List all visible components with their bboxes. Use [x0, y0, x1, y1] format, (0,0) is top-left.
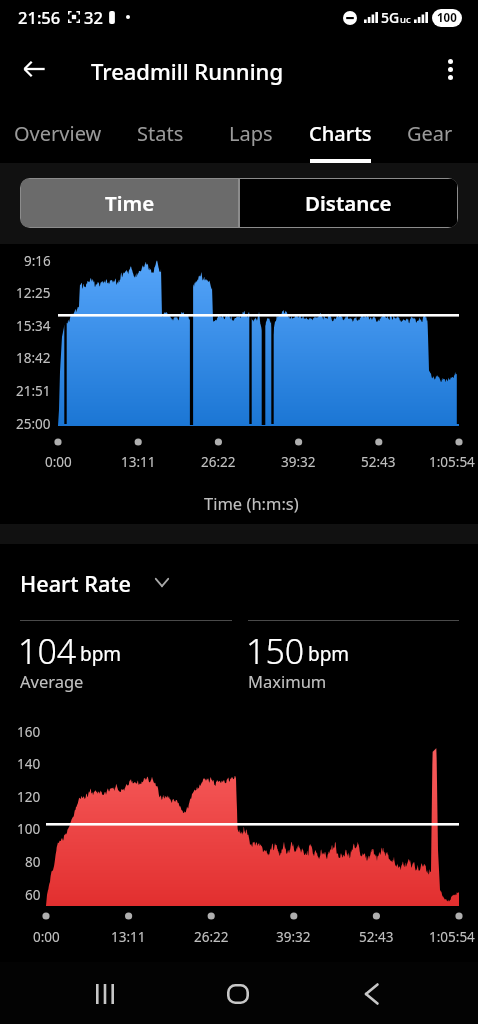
staticText: 21:56	[18, 6, 61, 28]
staticText: 25:00	[16, 415, 51, 433]
button[interactable]: Navigate up	[12, 46, 58, 92]
button[interactable]: Laps	[205, 102, 295, 163]
staticText: 9:16	[24, 252, 51, 270]
staticText: 32	[84, 6, 103, 28]
staticText: 100	[437, 10, 457, 26]
button[interactable]: Heart Rate	[20, 569, 169, 599]
staticText: 18:42	[16, 349, 51, 367]
staticText: 5G	[381, 8, 400, 27]
staticText: 26:22	[194, 928, 229, 946]
staticText: 15:34	[16, 317, 51, 335]
staticText: Gear	[407, 120, 453, 147]
staticText: Distance	[305, 189, 392, 217]
staticText: Maximum	[248, 670, 327, 692]
staticText: 100	[17, 820, 41, 838]
staticText: 39:32	[281, 453, 316, 471]
staticText: Charts	[309, 120, 372, 147]
staticText: 52:43	[359, 928, 394, 946]
staticText: 21:51	[16, 382, 51, 400]
staticText: 120	[17, 788, 41, 806]
button[interactable]: Recent apps	[73, 970, 137, 1018]
staticText: bpm	[80, 641, 122, 667]
staticText: 150	[246, 628, 305, 674]
staticText: 1:05:54	[429, 453, 475, 471]
staticText: Time (h:m:s)	[204, 492, 299, 514]
staticText: 140	[17, 755, 41, 773]
staticText: 80	[25, 853, 41, 871]
staticText: uc	[400, 13, 411, 26]
staticText: 104	[18, 628, 77, 674]
staticText: 160	[17, 723, 41, 741]
staticText: 0:00	[45, 453, 72, 471]
button[interactable]: Time	[21, 179, 238, 227]
staticText: Time	[105, 189, 155, 217]
button[interactable]: Charts	[295, 102, 388, 163]
staticText: 60	[25, 886, 41, 904]
staticText: Overview	[14, 120, 102, 147]
staticText: 26:22	[201, 453, 236, 471]
button[interactable]: More options	[427, 46, 473, 92]
staticText: 12:25	[16, 284, 51, 302]
staticText: bpm	[308, 641, 350, 667]
staticText: Laps	[229, 120, 273, 147]
button[interactable]: Distance	[240, 179, 457, 227]
staticText: 0:00	[33, 928, 60, 946]
button[interactable]: Back	[339, 970, 403, 1018]
button[interactable]: Overview	[0, 102, 110, 163]
staticText: Average	[20, 670, 84, 692]
staticText: 1:05:54	[429, 928, 475, 946]
button[interactable]: Gear	[388, 102, 478, 163]
staticText: Treadmill Running	[91, 56, 284, 86]
button[interactable]: Home	[206, 970, 270, 1018]
staticText: Heart Rate	[20, 569, 132, 599]
staticText: 52:43	[361, 453, 396, 471]
staticText: Stats	[137, 120, 184, 147]
staticText: 13:11	[111, 928, 146, 946]
staticText: 39:32	[276, 928, 311, 946]
button[interactable]: Stats	[110, 102, 205, 163]
staticText: 13:11	[121, 453, 156, 471]
